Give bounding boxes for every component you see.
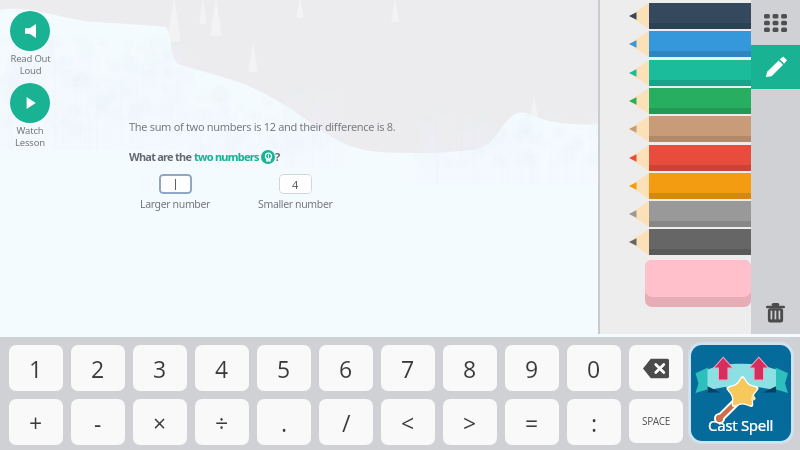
button[interactable]: 4 bbox=[249, 174, 342, 211]
button[interactable]: All tools bbox=[751, 0, 800, 45]
staticText: < bbox=[401, 407, 415, 438]
button[interactable]: 9 bbox=[505, 345, 559, 391]
button[interactable]: 6 bbox=[319, 345, 373, 391]
staticText: ? bbox=[275, 149, 280, 164]
button[interactable]: Read Out Loud bbox=[0, 11, 60, 76]
staticText: - bbox=[94, 407, 102, 438]
button[interactable]: < bbox=[381, 399, 435, 445]
button[interactable]: : bbox=[567, 399, 621, 445]
button[interactable]: × bbox=[133, 399, 187, 445]
button[interactable]: Colour 4 bbox=[629, 88, 751, 114]
button[interactable]: = bbox=[505, 399, 559, 445]
button[interactable]: 8 bbox=[443, 345, 497, 391]
button[interactable]: Backspace bbox=[629, 345, 683, 391]
button[interactable]: Colour 5 bbox=[629, 116, 751, 142]
button[interactable]: Cast Spell bbox=[688, 342, 794, 444]
button[interactable]: Colour 2 bbox=[629, 31, 751, 57]
staticText: Smaller number bbox=[258, 197, 333, 211]
button[interactable]: 7 bbox=[381, 345, 435, 391]
button[interactable]: 3 bbox=[133, 345, 187, 391]
button[interactable]: SPACE bbox=[629, 399, 683, 443]
staticText: : bbox=[591, 407, 598, 438]
staticText: 9 bbox=[525, 353, 539, 384]
staticText: 4 bbox=[215, 353, 229, 384]
button[interactable]: Larger number bbox=[129, 174, 222, 211]
button[interactable]: 0 bbox=[567, 345, 621, 391]
button[interactable]: / bbox=[319, 399, 373, 445]
staticText: 2 bbox=[91, 353, 105, 384]
button[interactable]: + bbox=[9, 399, 63, 445]
button[interactable]: Draw bbox=[751, 45, 800, 89]
button[interactable]: > bbox=[443, 399, 497, 445]
staticText: two numbers bbox=[194, 149, 259, 164]
button[interactable]: Delete bbox=[751, 296, 800, 330]
button[interactable]: Colour 9 bbox=[629, 229, 751, 255]
button[interactable]: - bbox=[71, 399, 125, 445]
staticText: Larger number bbox=[140, 197, 211, 211]
button[interactable]: Colour 1 bbox=[629, 3, 751, 29]
staticText: / bbox=[342, 407, 351, 438]
staticText: 7 bbox=[401, 353, 415, 384]
button[interactable]: 1 bbox=[9, 345, 63, 391]
button[interactable]: Colour 8 bbox=[629, 201, 751, 227]
staticText: 0 bbox=[587, 353, 601, 384]
staticText: SPACE bbox=[642, 414, 671, 428]
staticText: 4 bbox=[292, 177, 299, 192]
staticText: 8 bbox=[463, 353, 477, 384]
button[interactable]: 2 bbox=[71, 345, 125, 391]
staticText: What are the bbox=[129, 149, 194, 164]
button[interactable]: ÷ bbox=[195, 399, 249, 445]
staticText: Read Out Loud bbox=[10, 52, 51, 76]
staticText: > bbox=[463, 407, 477, 438]
staticText: = bbox=[525, 407, 539, 438]
staticText: 1 bbox=[29, 353, 43, 384]
button[interactable]: Colour 3 bbox=[629, 60, 751, 86]
staticText: 3 bbox=[153, 353, 167, 384]
button[interactable]: . bbox=[257, 399, 311, 445]
staticText: The sum of two numbers is 12 and their d… bbox=[129, 119, 396, 134]
button[interactable]: Hint bbox=[261, 150, 275, 164]
button[interactable]: Colour 6 bbox=[629, 145, 751, 171]
staticText: Watch Lesson bbox=[15, 124, 45, 148]
staticText: + bbox=[29, 407, 43, 438]
staticText: . bbox=[281, 407, 288, 438]
button[interactable]: Watch Lesson bbox=[0, 83, 60, 148]
button[interactable]: 5 bbox=[257, 345, 311, 391]
staticText: 6 bbox=[339, 353, 353, 384]
button[interactable]: Eraser bbox=[645, 260, 751, 307]
staticText: ÷ bbox=[215, 407, 229, 438]
button[interactable]: Colour 7 bbox=[629, 173, 751, 199]
staticText: Cast Spell bbox=[708, 415, 774, 435]
button[interactable]: 4 bbox=[195, 345, 249, 391]
staticText: 5 bbox=[277, 353, 291, 384]
staticText: × bbox=[153, 407, 167, 438]
